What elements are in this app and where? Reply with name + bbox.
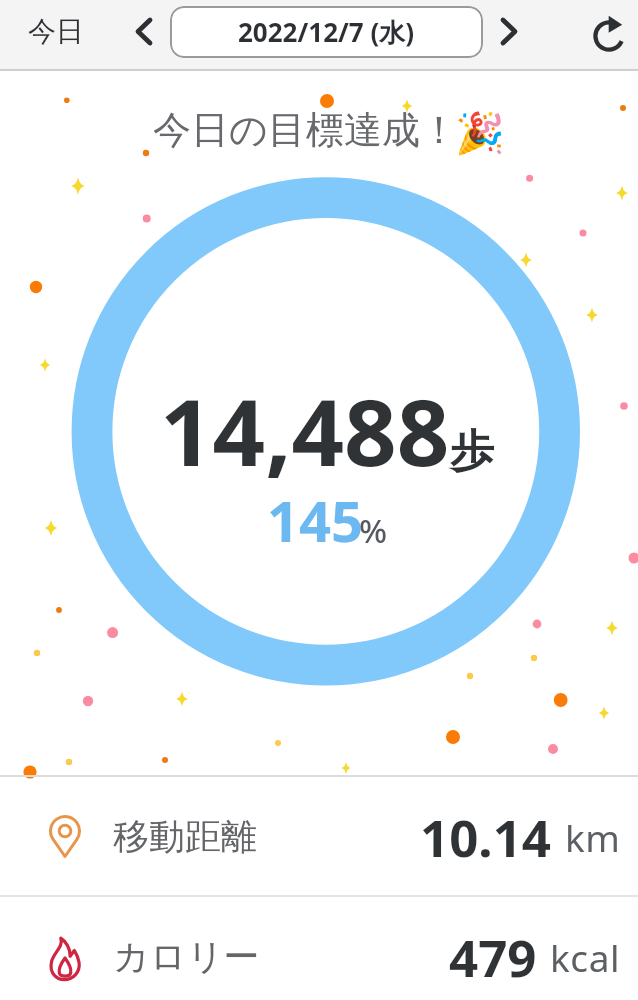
staticText: カロリー <box>113 934 260 979</box>
staticText: 10.14 <box>420 802 552 871</box>
staticText: 移動距離 <box>113 814 257 859</box>
button[interactable]: Next day <box>487 0 531 63</box>
button[interactable]: カロリー <box>0 897 638 1000</box>
staticText: km <box>565 812 621 862</box>
button[interactable]: 2022/12/7 (水) <box>170 6 483 58</box>
staticText: % <box>359 508 388 553</box>
button[interactable]: Refresh <box>585 6 633 65</box>
button[interactable]: 今日 <box>14 0 98 63</box>
staticText: 今日 <box>28 14 84 49</box>
staticText: 14,488 <box>160 368 450 493</box>
staticText: 2022/12/7 (水) <box>238 14 415 50</box>
staticText: kcal <box>550 932 621 982</box>
staticText: 歩 <box>450 424 494 479</box>
button[interactable]: Previous day <box>122 0 166 63</box>
staticText: 145 <box>267 482 364 558</box>
button[interactable]: 移動距離 <box>0 777 638 895</box>
staticText: 今日の目標達成！ <box>153 106 458 154</box>
staticText: 🎉 <box>455 110 505 157</box>
staticText: 479 <box>449 922 537 991</box>
